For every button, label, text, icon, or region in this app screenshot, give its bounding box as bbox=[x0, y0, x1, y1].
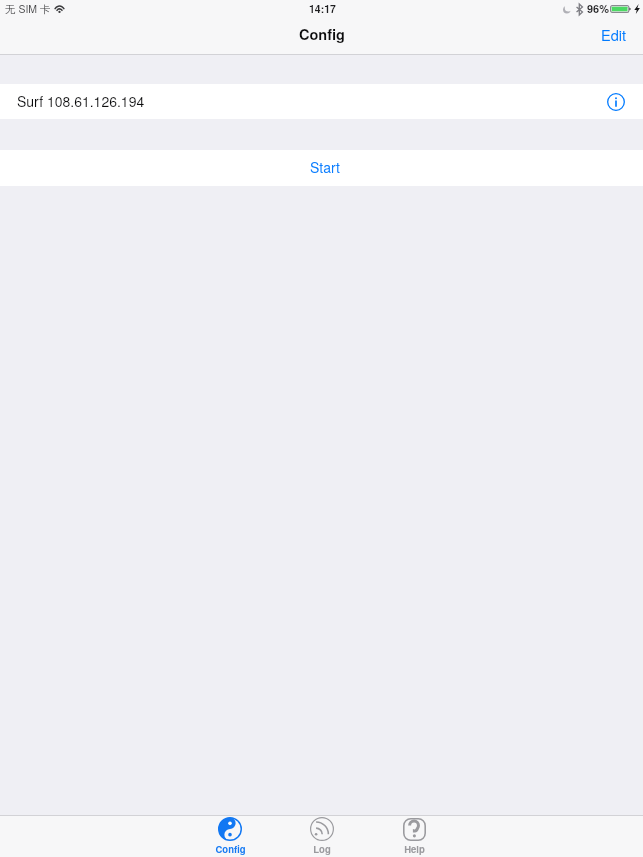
staticText: Config bbox=[299, 24, 345, 45]
button[interactable]: Surf 108.61.126.194 bbox=[0, 84, 643, 119]
button[interactable]: Start bbox=[0, 150, 643, 186]
staticText: 无 SIM 卡 bbox=[5, 1, 51, 16]
staticText: Surf 108.61.126.194 bbox=[17, 91, 145, 111]
staticText: 96% bbox=[587, 1, 610, 17]
button[interactable]: More info bbox=[607, 93, 625, 111]
staticText: Log bbox=[313, 842, 331, 856]
staticText: Config bbox=[215, 842, 246, 856]
staticText: Edit bbox=[601, 24, 626, 45]
button[interactable]: Edit bbox=[584, 17, 643, 54]
staticText: Start bbox=[310, 157, 340, 177]
staticText: 14:17 bbox=[309, 1, 336, 16]
button[interactable]: Help bbox=[368, 816, 460, 857]
button[interactable]: Config bbox=[184, 816, 276, 857]
button[interactable]: Log bbox=[276, 816, 368, 857]
staticText: Help bbox=[404, 842, 425, 856]
